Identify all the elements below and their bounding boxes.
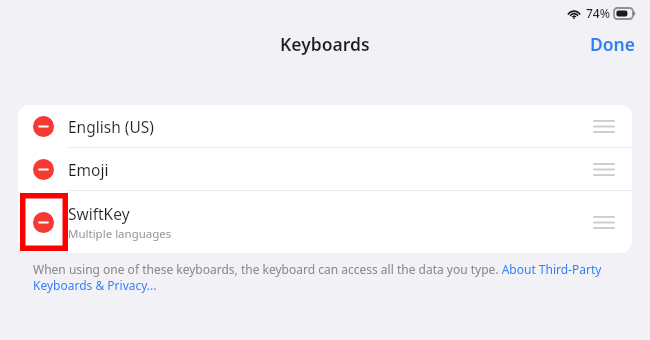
button[interactable]: Remove Emoji: [18, 148, 632, 190]
staticText: Done: [590, 32, 636, 56]
button[interactable]: Remove English (US): [18, 105, 632, 147]
staticText: English (US): [68, 116, 154, 137]
button[interactable]: Remove SwiftKey: [18, 191, 68, 253]
button[interactable]: Remove Emoji: [18, 148, 68, 190]
button[interactable]: Remove English (US): [18, 105, 68, 147]
staticText: Emoji: [68, 159, 109, 180]
button[interactable]: Remove SwiftKey: [18, 191, 632, 253]
staticText: SwiftKey: [68, 203, 130, 224]
button[interactable]: When using one of these keyboards, the k…: [33, 261, 620, 293]
button[interactable]: Reorder SwiftKey: [576, 191, 632, 253]
staticText: Keyboards: [280, 32, 370, 56]
button[interactable]: Done: [576, 26, 650, 62]
staticText: When using one of these keyboards, the k…: [33, 261, 620, 293]
staticText: Multiple languages: [68, 226, 172, 242]
button[interactable]: Reorder English (US): [576, 105, 632, 147]
button[interactable]: Reorder Emoji: [576, 148, 632, 190]
staticText: 74%: [586, 5, 610, 21]
